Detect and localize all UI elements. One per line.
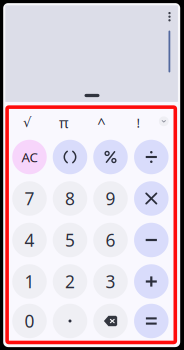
button[interactable]: Subtract [134,223,169,257]
button[interactable]: All clear [12,140,47,174]
button[interactable]: 8 [53,181,87,216]
staticText: 8 [65,187,75,210]
button[interactable]: 5 [53,223,87,257]
button[interactable]: Delete [93,304,128,338]
button[interactable]: Equals [134,304,169,338]
staticText: 5 [65,228,75,251]
button[interactable]: More options [161,7,177,27]
staticText: 2 [65,270,75,293]
staticText: 3 [105,270,115,293]
button[interactable]: Power [86,111,116,135]
button[interactable]: Square root [12,110,42,134]
button[interactable]: Collapse function keys [156,113,172,129]
staticText: √ [23,115,31,130]
staticText: 7 [24,187,34,210]
button[interactable]: 0 [12,304,47,338]
button[interactable]: Pi [49,110,79,134]
button[interactable]: Divide [134,140,169,174]
staticText: AC [21,148,37,166]
staticText: 0 [24,309,34,332]
button[interactable]: Factorial [123,110,153,134]
button[interactable]: Multiply [134,181,169,216]
button[interactable]: Parentheses [53,140,87,174]
button[interactable]: Add [134,264,169,299]
button[interactable]: 1 [12,264,47,299]
button[interactable]: 3 [93,264,128,299]
staticText: 1 [24,270,34,293]
staticText: 4 [24,228,34,251]
staticText: 9 [105,187,115,210]
staticText: ^ [97,113,105,133]
staticText: π [59,113,69,132]
button[interactable]: 7 [12,181,47,216]
button[interactable]: 6 [93,223,128,257]
button[interactable]: 2 [53,264,87,299]
button[interactable]: Decimal point [53,304,87,338]
button[interactable]: 4 [12,223,47,257]
staticText: ! [136,114,140,131]
staticText: 6 [105,228,115,251]
button[interactable]: 9 [93,181,128,216]
button[interactable]: Percent [93,140,128,174]
